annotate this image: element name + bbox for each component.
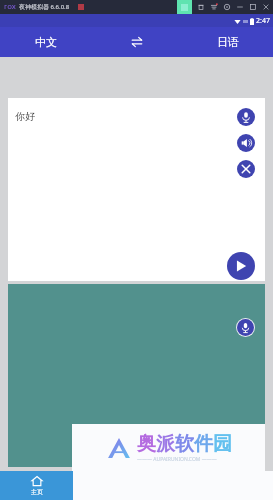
button[interactable]: Clear — [237, 160, 255, 178]
button[interactable]: Voice input — [237, 108, 255, 126]
staticText: ——— AUPAIRUNION.COM ——— — [137, 456, 217, 463]
staticText: ΓOX — [4, 3, 16, 11]
staticText: 件 — [194, 432, 213, 456]
button[interactable] — [262, 3, 270, 11]
button[interactable] — [236, 3, 244, 11]
button[interactable] — [223, 3, 231, 11]
button[interactable] — [197, 3, 205, 11]
button[interactable]: 日语 — [182, 27, 273, 57]
button[interactable]: Swap languages — [91, 27, 182, 57]
button[interactable]: 主页 — [0, 471, 73, 500]
staticText: 园 — [213, 432, 232, 456]
button[interactable] — [210, 3, 218, 11]
button[interactable]: Speak — [237, 134, 255, 152]
button[interactable]: 你好 — [8, 98, 265, 281]
button[interactable]: Play translation — [227, 252, 255, 280]
staticText: 2:47 — [256, 16, 270, 26]
button[interactable]: 中文 — [0, 27, 91, 57]
button[interactable]: Voice input — [8, 284, 265, 467]
staticText: 日语 — [217, 35, 239, 49]
staticText: 你好 — [15, 110, 35, 123]
staticText: 中文 — [35, 35, 57, 49]
button[interactable]: Voice input — [237, 319, 254, 336]
staticText: 奥 — [137, 432, 156, 456]
button[interactable] — [249, 3, 257, 11]
staticText: 软 — [175, 432, 194, 456]
staticText: 派 — [156, 432, 175, 456]
staticText: 主页 — [31, 488, 43, 496]
staticText: 夜神模拟器 6.6.0.8 — [19, 3, 70, 11]
